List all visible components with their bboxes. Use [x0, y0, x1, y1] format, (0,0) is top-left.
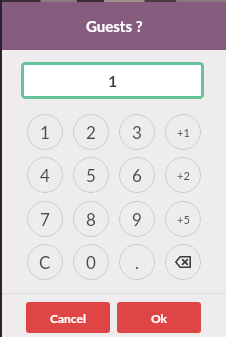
staticText: 0 [86, 252, 96, 272]
button[interactable]: 8 [73, 201, 109, 237]
staticText: 9 [132, 209, 142, 229]
button[interactable]: 3 [119, 114, 155, 150]
button[interactable]: +5 [165, 201, 201, 237]
staticText: 5 [86, 165, 96, 185]
staticText: Cancel [50, 311, 86, 325]
button[interactable]: 5 [73, 157, 109, 193]
button[interactable]: 0 [73, 244, 109, 280]
staticText: +2 [177, 169, 190, 182]
button[interactable]: Backspace [165, 244, 201, 280]
staticText: 1 [108, 71, 118, 90]
staticText: . [135, 252, 140, 272]
staticText: 4 [40, 165, 50, 185]
button[interactable]: +1 [165, 114, 201, 150]
staticText: C [39, 252, 51, 272]
button[interactable]: 2 [73, 114, 109, 150]
staticText: +5 [177, 213, 190, 226]
button[interactable]: C [27, 244, 63, 280]
button[interactable]: 9 [119, 201, 155, 237]
staticText: Guests ? [86, 17, 143, 35]
staticText: 7 [40, 209, 50, 229]
button[interactable]: Guests ? [2, 2, 226, 50]
button[interactable]: Cancel [26, 302, 110, 333]
button[interactable]: 7 [27, 201, 63, 237]
button[interactable]: 1 [21, 62, 204, 99]
button[interactable]: . [119, 244, 155, 280]
button[interactable]: 1 [27, 114, 63, 150]
staticText: 2 [86, 122, 96, 142]
staticText: 8 [86, 209, 96, 229]
staticText: +1 [177, 126, 190, 139]
staticText: 6 [132, 165, 142, 185]
staticText: Ok [151, 311, 168, 325]
button[interactable]: 4 [27, 157, 63, 193]
button[interactable]: +2 [165, 157, 201, 193]
staticText: 3 [132, 122, 142, 142]
staticText: 1 [40, 122, 50, 142]
button[interactable]: Ok [117, 302, 201, 333]
button[interactable]: 6 [119, 157, 155, 193]
